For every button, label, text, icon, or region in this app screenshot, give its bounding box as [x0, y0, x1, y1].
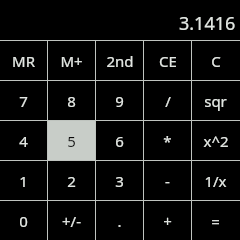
- button[interactable]: .: [96, 201, 143, 240]
- button[interactable]: M+: [48, 41, 95, 80]
- button[interactable]: x^2: [192, 121, 239, 160]
- button[interactable]: 5: [48, 121, 95, 160]
- staticText: 6: [115, 131, 124, 151]
- staticText: x^2: [203, 131, 229, 151]
- staticText: 2: [67, 171, 76, 191]
- staticText: 7: [19, 91, 28, 111]
- staticText: 0: [19, 211, 28, 231]
- staticText: .: [117, 211, 122, 231]
- staticText: /: [165, 91, 171, 111]
- button[interactable]: /: [144, 81, 191, 120]
- button[interactable]: *: [144, 121, 191, 160]
- staticText: -: [165, 171, 170, 191]
- button[interactable]: 1/x: [192, 161, 239, 200]
- staticText: 2nd: [106, 51, 134, 71]
- staticText: *: [163, 131, 172, 151]
- button[interactable]: C: [192, 41, 239, 80]
- button[interactable]: =: [192, 201, 239, 240]
- staticText: +/-: [62, 211, 81, 231]
- staticText: 1/x: [204, 171, 227, 191]
- staticText: sqr: [204, 91, 227, 111]
- button[interactable]: 2: [48, 161, 95, 200]
- button[interactable]: 6: [96, 121, 143, 160]
- button[interactable]: MR: [0, 41, 47, 80]
- button[interactable]: +: [144, 201, 191, 240]
- staticText: 9: [115, 91, 124, 111]
- staticText: 1: [19, 171, 28, 191]
- staticText: M+: [60, 51, 83, 71]
- button[interactable]: 9: [96, 81, 143, 120]
- staticText: CE: [159, 51, 177, 71]
- staticText: 8: [67, 91, 76, 111]
- button[interactable]: 7: [0, 81, 47, 120]
- button[interactable]: +/-: [48, 201, 95, 240]
- staticText: 4: [19, 131, 28, 151]
- staticText: 5: [67, 131, 76, 151]
- button[interactable]: sqr: [192, 81, 239, 120]
- button[interactable]: 0: [0, 201, 47, 240]
- staticText: 3: [115, 171, 124, 191]
- button[interactable]: 4: [0, 121, 47, 160]
- staticText: MR: [12, 51, 35, 71]
- button[interactable]: CE: [144, 41, 191, 80]
- staticText: +: [163, 211, 172, 231]
- button[interactable]: -: [144, 161, 191, 200]
- staticText: 3.1416: [179, 11, 236, 36]
- staticText: C: [211, 51, 221, 71]
- button[interactable]: 2nd: [96, 41, 143, 80]
- button[interactable]: 3: [96, 161, 143, 200]
- button[interactable]: 8: [48, 81, 95, 120]
- staticText: =: [211, 211, 220, 231]
- button[interactable]: 1: [0, 161, 47, 200]
